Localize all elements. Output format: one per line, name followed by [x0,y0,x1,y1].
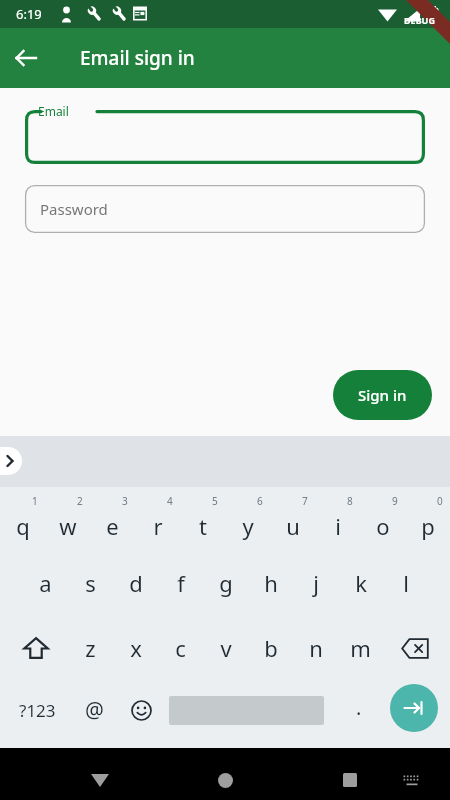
staticText: u [286,511,300,541]
button[interactable]: Shift [11,618,61,678]
button[interactable]: Backspace [389,618,441,678]
button[interactable]: Password [25,185,425,233]
staticText: b [264,633,278,663]
staticText: t [199,511,207,541]
button[interactable]: Back [78,758,122,800]
staticText: 9 [392,494,398,508]
staticText: 2 [77,494,83,508]
button[interactable]: Email [25,110,425,164]
button[interactable]: Sign in [333,370,432,420]
staticText: q [16,511,30,541]
staticText: 6:19 [16,5,42,23]
button[interactable]: p [405,489,450,551]
button[interactable]: Emoji [118,681,164,739]
staticText: l [403,568,409,598]
staticText: 5 [212,494,218,508]
staticText: m [350,633,371,663]
staticText: Email sign in [80,45,195,71]
staticText: Sign in [358,385,407,405]
button[interactable]: Recents [328,758,372,800]
staticText: e [106,511,119,541]
button[interactable]: Switch keyboard [392,760,432,800]
staticText: a [39,568,52,598]
staticText: 1 [32,494,38,508]
button[interactable]: s [68,552,113,614]
staticText: p [421,511,435,541]
staticText: . [356,694,362,721]
staticText: Password [40,199,108,219]
staticText: k [355,568,367,598]
button[interactable]: t [180,489,225,551]
button[interactable]: e [90,489,135,551]
button[interactable]: v [203,618,248,678]
staticText: @ [85,696,104,725]
button[interactable]: g [203,552,248,614]
button[interactable]: @ [70,681,118,739]
staticText: x [130,633,142,663]
staticText: w [59,511,77,541]
staticText: h [264,568,278,598]
button[interactable]: i [315,489,360,551]
button[interactable]: Enter [390,684,438,732]
button[interactable]: Space [169,681,324,739]
button[interactable]: ?123 [4,681,70,739]
button[interactable]: q [0,489,45,551]
staticText: 4 [167,494,173,508]
button[interactable]: Back [8,40,44,76]
button[interactable]: Expand suggestions [0,447,22,475]
staticText: i [335,511,341,541]
button[interactable]: j [293,552,338,614]
button[interactable]: m [338,618,383,678]
button[interactable]: o [360,489,405,551]
staticText: 8 [347,494,353,508]
staticText: v [220,633,232,663]
staticText: f [177,568,185,598]
staticText: s [85,568,96,598]
button[interactable]: . [336,681,382,739]
staticText: ?123 [19,699,56,722]
button[interactable]: a [23,552,68,614]
button[interactable]: y [225,489,270,551]
button[interactable]: h [248,552,293,614]
staticText: Email [38,103,69,119]
staticText: 7 [302,494,308,508]
button[interactable]: l [383,552,428,614]
staticText: y [242,511,254,541]
button[interactable]: k [338,552,383,614]
staticText: z [85,633,96,663]
button[interactable]: u [270,489,315,551]
staticText: 0 [437,494,443,508]
button[interactable]: c [158,618,203,678]
button[interactable]: f [158,552,203,614]
button[interactable]: n [293,618,338,678]
staticText: 3 [122,494,128,508]
staticText: g [219,568,233,598]
button[interactable]: z [68,618,113,678]
staticText: d [129,568,143,598]
staticText: 6 [257,494,263,508]
staticText: o [376,511,390,541]
staticText: r [153,511,163,541]
button[interactable]: w [45,489,90,551]
button[interactable]: d [113,552,158,614]
button[interactable]: b [248,618,293,678]
staticText: j [313,568,319,598]
staticText: n [309,633,323,663]
button[interactable]: Home [203,758,247,800]
button[interactable]: x [113,618,158,678]
staticText: DEBUG [404,14,435,26]
staticText: c [175,633,186,663]
button[interactable]: r [135,489,180,551]
